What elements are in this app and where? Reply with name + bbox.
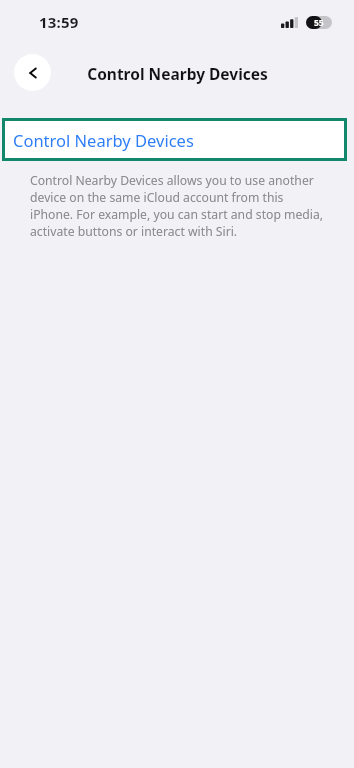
staticText: Control Nearby Devices (13, 129, 194, 151)
staticText: 13:59 (39, 12, 79, 32)
staticText: 55 (314, 17, 324, 29)
button[interactable]: Back (14, 54, 51, 91)
button[interactable]: Control Nearby Devices (2, 118, 347, 161)
staticText: Control Nearby Devices allows you to use… (30, 172, 328, 240)
staticText: Control Nearby Devices (87, 63, 268, 84)
